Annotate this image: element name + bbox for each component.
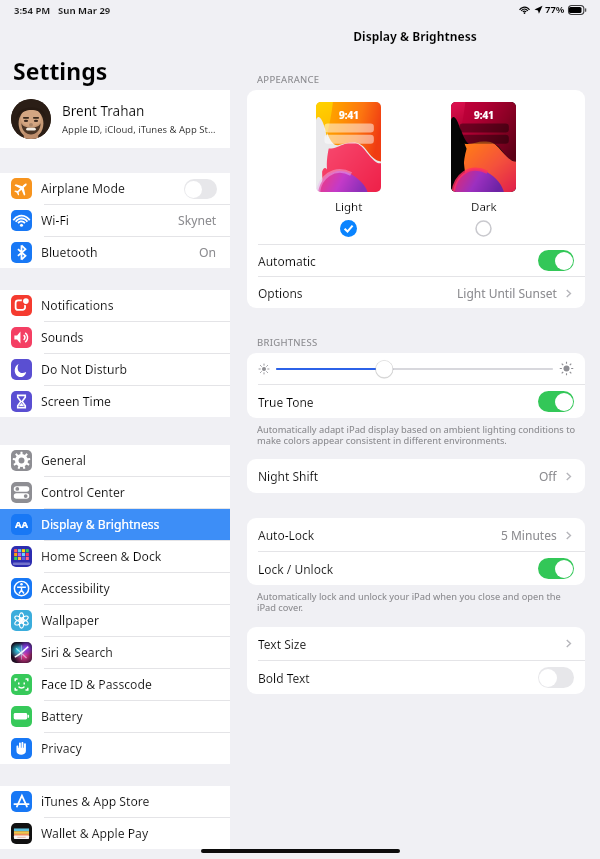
staticText: 77% (545, 3, 565, 16)
staticText: Display & Brightness (230, 28, 600, 44)
staticText: Off (539, 468, 557, 484)
staticText: Sounds (41, 329, 84, 346)
staticText: Options (258, 285, 303, 301)
staticText: Wi-Fi (41, 212, 69, 229)
staticText: Control Center (41, 484, 125, 501)
staticText: 9:41 (474, 108, 494, 122)
staticText: Night Shift (258, 468, 319, 484)
staticText: Airplane Mode (41, 180, 125, 197)
button[interactable]: Airplane Mode (0, 173, 230, 204)
staticText: Bluetooth (41, 244, 98, 261)
staticText: Battery (41, 708, 83, 725)
staticText: Automatic (258, 253, 316, 269)
button[interactable]: Privacy (0, 733, 230, 764)
staticText: Automatically adapt iPad display based o… (257, 423, 582, 447)
staticText: Apple ID, iCloud, iTunes & App St… (62, 123, 216, 136)
staticText: Automatically lock and unlock your iPad … (257, 590, 582, 614)
button[interactable]: On (538, 558, 574, 579)
staticText: Bold Text (258, 670, 310, 686)
button[interactable]: Siri & Search (0, 637, 230, 668)
button[interactable]: Control Center (0, 477, 230, 508)
button[interactable]: Do Not Disturb (0, 354, 230, 385)
button[interactable]: Automatic (247, 245, 585, 276)
button[interactable]: Night Shift (247, 459, 585, 493)
staticText: BRIGHTNESS (257, 336, 318, 349)
staticText: Text Size (258, 636, 307, 652)
button[interactable]: Off (538, 667, 574, 688)
button[interactable]: Brent Trahan (0, 90, 230, 148)
button[interactable]: Wallpaper (0, 605, 230, 636)
staticText: Light (335, 199, 363, 215)
button[interactable]: Wi-Fi (0, 205, 230, 236)
staticText: Siri & Search (41, 644, 113, 661)
staticText: Dark (471, 199, 497, 215)
staticText: Settings (13, 55, 108, 86)
button[interactable]: Light (316, 102, 381, 237)
button[interactable]: Bluetooth (0, 237, 230, 268)
staticText: Privacy (41, 740, 82, 757)
button[interactable]: Options (247, 277, 585, 308)
staticText: AA (15, 518, 29, 531)
staticText: 9:41 (339, 108, 359, 122)
button[interactable]: Brightness (247, 353, 585, 384)
button[interactable]: Notifications (0, 290, 230, 321)
button[interactable]: Off (184, 179, 217, 199)
staticText: Lock / Unlock (258, 561, 334, 577)
staticText: Do Not Disturb (41, 361, 127, 378)
staticText: Brent Trahan (62, 102, 145, 120)
staticText: Screen Time (41, 393, 111, 410)
button[interactable]: Dark (451, 102, 516, 237)
button[interactable]: Battery (0, 701, 230, 732)
button[interactable]: On (538, 391, 574, 412)
staticText: Wallpaper (41, 612, 99, 629)
staticText: On (199, 244, 217, 261)
staticText: Accessibility (41, 580, 110, 597)
staticText: Face ID & Passcode (41, 676, 152, 693)
button[interactable]: Screen Time (0, 386, 230, 417)
staticText: General (41, 452, 86, 469)
staticText: Home Screen & Dock (41, 548, 162, 565)
staticText: Skynet (178, 212, 217, 229)
staticText: Wallet & Apple Pay (41, 825, 149, 842)
staticText: 3:54 PM (14, 4, 51, 17)
button[interactable]: Accessibility (0, 573, 230, 604)
staticText: APPEARANCE (257, 73, 320, 86)
button[interactable]: On (538, 250, 574, 271)
staticText: Display & Brightness (41, 516, 160, 533)
button[interactable]: Wallet & Apple Pay (0, 818, 230, 849)
button[interactable]: Text Size (247, 627, 585, 660)
button[interactable]: iTunes & App Store (0, 786, 230, 817)
button[interactable]: Home Screen & Dock (0, 541, 230, 572)
staticText: 5 Minutes (501, 527, 557, 543)
button[interactable]: Lock / Unlock (247, 552, 585, 585)
button[interactable]: AA (0, 509, 230, 540)
button[interactable]: General (0, 445, 230, 476)
staticText: Auto-Lock (258, 527, 315, 543)
staticText: Sun Mar 29 (58, 4, 111, 17)
button[interactable]: Bold Text (247, 661, 585, 694)
staticText: iTunes & App Store (41, 793, 150, 810)
staticText: Light Until Sunset (457, 285, 557, 301)
staticText: True Tone (258, 394, 314, 410)
button[interactable]: Auto-Lock (247, 518, 585, 551)
button[interactable]: Face ID & Passcode (0, 669, 230, 700)
button[interactable]: Sounds (0, 322, 230, 353)
button[interactable]: True Tone (247, 385, 585, 418)
staticText: Notifications (41, 297, 114, 314)
